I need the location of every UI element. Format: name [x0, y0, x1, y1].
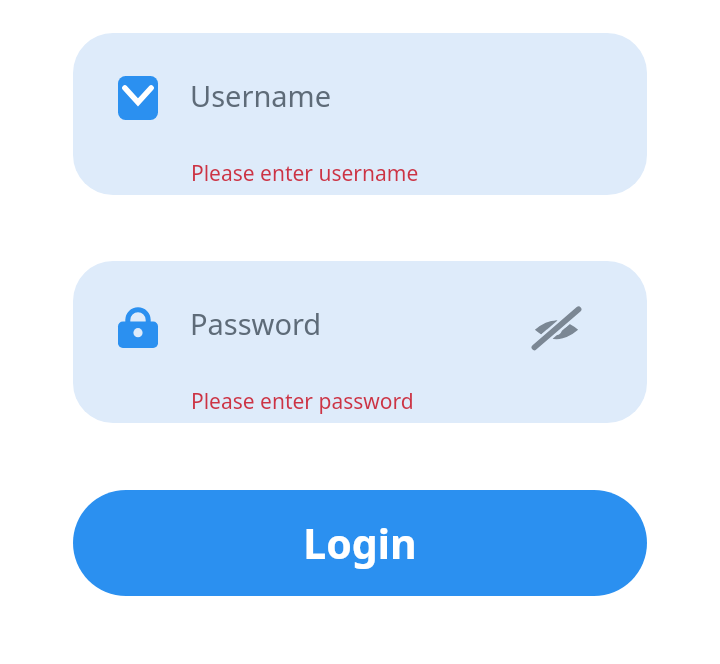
staticText: Password [190, 304, 322, 343]
button[interactable]: Login [73, 490, 647, 596]
button[interactable]: Password [73, 261, 647, 423]
staticText: Please enter password [191, 387, 414, 416]
button[interactable]: Username [73, 33, 647, 195]
staticText: Login [303, 515, 417, 571]
button[interactable]: Show password [528, 301, 584, 357]
staticText: Please enter username [191, 159, 419, 188]
staticText: Username [190, 76, 332, 115]
